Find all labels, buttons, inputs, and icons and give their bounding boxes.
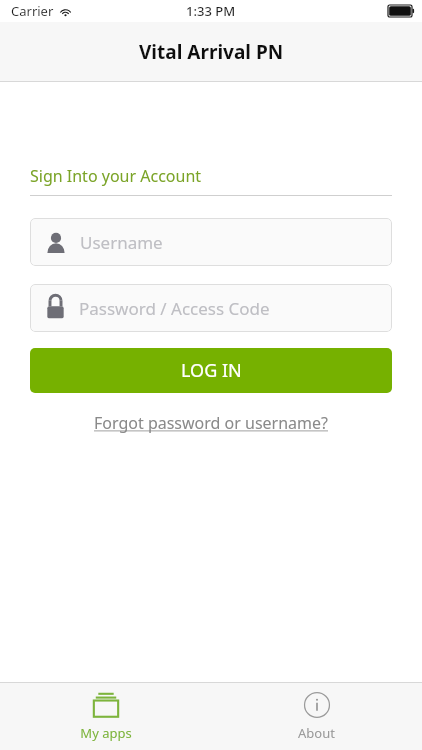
staticText: Vital Arrival PN bbox=[139, 39, 284, 65]
staticText: Sign Into your Account bbox=[30, 165, 202, 187]
button[interactable]: Forgot password or username? bbox=[90, 409, 333, 437]
staticText: My apps bbox=[80, 724, 132, 742]
button[interactable]: About bbox=[280, 685, 353, 748]
staticText: Carrier bbox=[11, 2, 54, 20]
staticText: Forgot password or username? bbox=[94, 412, 329, 434]
button[interactable]: LOG IN bbox=[30, 348, 392, 393]
staticText: LOG IN bbox=[181, 358, 242, 383]
button[interactable]: My apps bbox=[62, 685, 150, 748]
staticText: Password / Access Code bbox=[79, 297, 270, 320]
staticText: About bbox=[298, 724, 335, 742]
staticText: Username bbox=[80, 231, 163, 254]
staticText: 1:33 PM bbox=[186, 2, 236, 20]
button[interactable]: Username bbox=[30, 218, 392, 266]
button[interactable]: Password / Access Code bbox=[30, 284, 392, 332]
